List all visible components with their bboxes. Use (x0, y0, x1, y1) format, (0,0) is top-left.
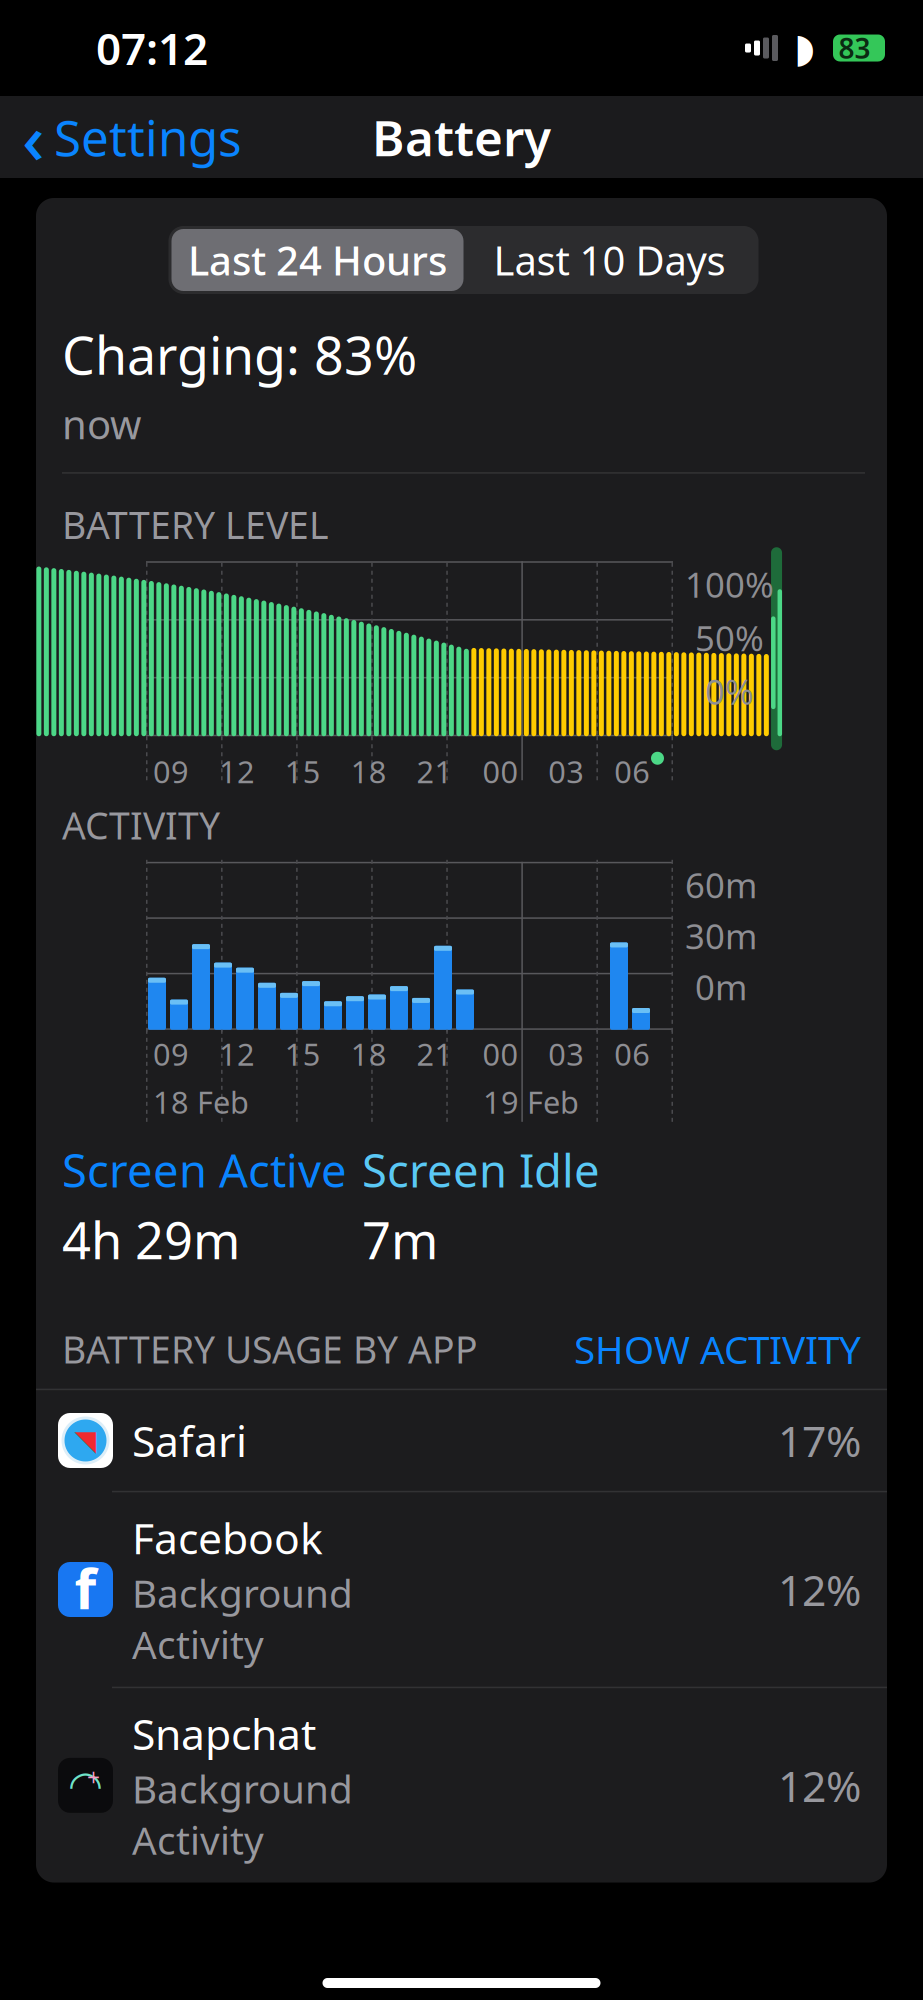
button[interactable]: f (36, 1491, 887, 1687)
staticText: 7m (362, 1206, 438, 1273)
staticText: 09 (153, 1033, 189, 1074)
staticText: 12 (219, 751, 255, 792)
button[interactable]: ◥ (36, 1390, 887, 1491)
staticText: 06 (614, 1033, 650, 1074)
staticText: Battery (372, 104, 551, 170)
staticText: 0% (705, 668, 754, 714)
staticText: ◠ (68, 1763, 103, 1808)
button[interactable]: Last 24 Hours (171, 229, 463, 291)
staticText: 50% (695, 615, 764, 661)
staticText: 83 (838, 29, 870, 67)
staticText: 18 Feb (153, 1081, 249, 1122)
staticText: Background Activity (132, 1567, 353, 1670)
staticText: 15 (285, 1033, 321, 1074)
staticText: Safari (132, 1412, 247, 1469)
staticText: now (62, 397, 141, 450)
staticText: Last 10 Days (493, 233, 725, 286)
staticText: ACTIVITY (62, 800, 220, 850)
staticText: 21 (416, 1033, 452, 1074)
staticText: Snapchat (132, 1705, 316, 1762)
staticText: 18 (351, 1033, 387, 1074)
staticText: 30m (685, 913, 757, 959)
staticText: 100% (685, 561, 774, 607)
staticText: Screen Idle (362, 1140, 600, 1200)
staticText: 00 (482, 751, 518, 792)
staticText: 07:12 (96, 19, 208, 77)
staticText: 09 (153, 751, 189, 792)
staticText: Screen Active (62, 1140, 347, 1200)
staticText: Charging: 83% (62, 320, 417, 389)
staticText: BATTERY USAGE BY APP (62, 1324, 478, 1374)
button[interactable]: ◠ (36, 1687, 887, 1883)
staticText: Last 24 Hours (188, 233, 447, 286)
staticText: 4h 29m (62, 1206, 240, 1273)
staticText: 19 Feb (483, 1081, 579, 1122)
staticText: ‹ (22, 91, 45, 183)
staticText: BATTERY LEVEL (62, 500, 329, 549)
staticText: 00 (482, 1033, 518, 1074)
staticText: 17% (778, 1412, 861, 1469)
staticText: 06 (614, 751, 650, 792)
staticText: Settings (54, 104, 242, 170)
staticText: f (74, 1550, 96, 1625)
staticText: 15 (285, 751, 321, 792)
button[interactable]: Last 10 Days (463, 229, 755, 291)
staticText: 12 (219, 1033, 255, 1074)
staticText: 12% (778, 1757, 861, 1814)
staticText: Facebook (132, 1509, 323, 1566)
button[interactable]: ‹ (0, 85, 242, 189)
staticText: 03 (548, 1033, 584, 1074)
staticText: Background Activity (132, 1763, 353, 1865)
button[interactable]: SHOW ACTIVITY (574, 1323, 861, 1375)
staticText: 18 (351, 751, 387, 792)
staticText: 12% (778, 1561, 861, 1618)
staticText: ◗ (794, 25, 815, 71)
staticText: 0m (695, 964, 747, 1010)
staticText: 03 (548, 751, 584, 792)
staticText: ◥ (74, 1425, 96, 1456)
staticText: SHOW ACTIVITY (574, 1323, 861, 1375)
staticText: 21 (416, 751, 452, 792)
staticText: 60m (685, 862, 757, 908)
staticText: + (87, 1762, 100, 1792)
